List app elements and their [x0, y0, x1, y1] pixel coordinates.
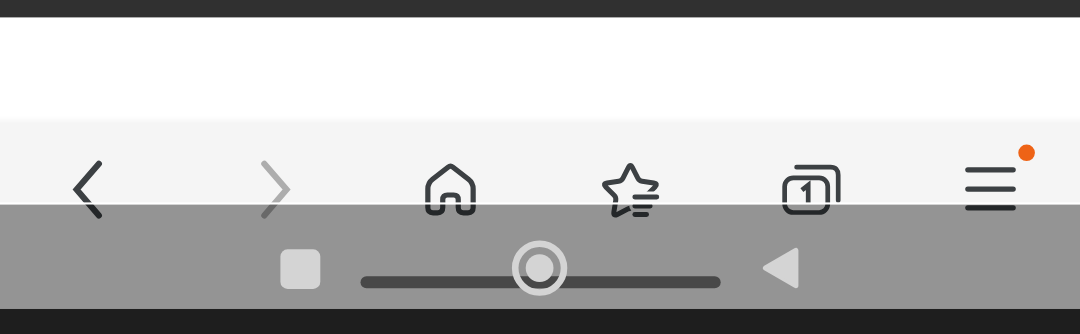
button[interactable]: Home	[400, 130, 500, 202]
button[interactable]: Menu	[941, 130, 1041, 202]
button[interactable]: Home screen	[494, 222, 584, 306]
button[interactable]: Bookmarks	[578, 130, 678, 202]
button[interactable]: Tabs	[756, 130, 856, 202]
button[interactable]: Recent apps	[255, 222, 345, 306]
button[interactable]: Forward	[237, 130, 337, 202]
button[interactable]: Back navigation	[734, 222, 824, 306]
button[interactable]: Back	[23, 130, 123, 202]
